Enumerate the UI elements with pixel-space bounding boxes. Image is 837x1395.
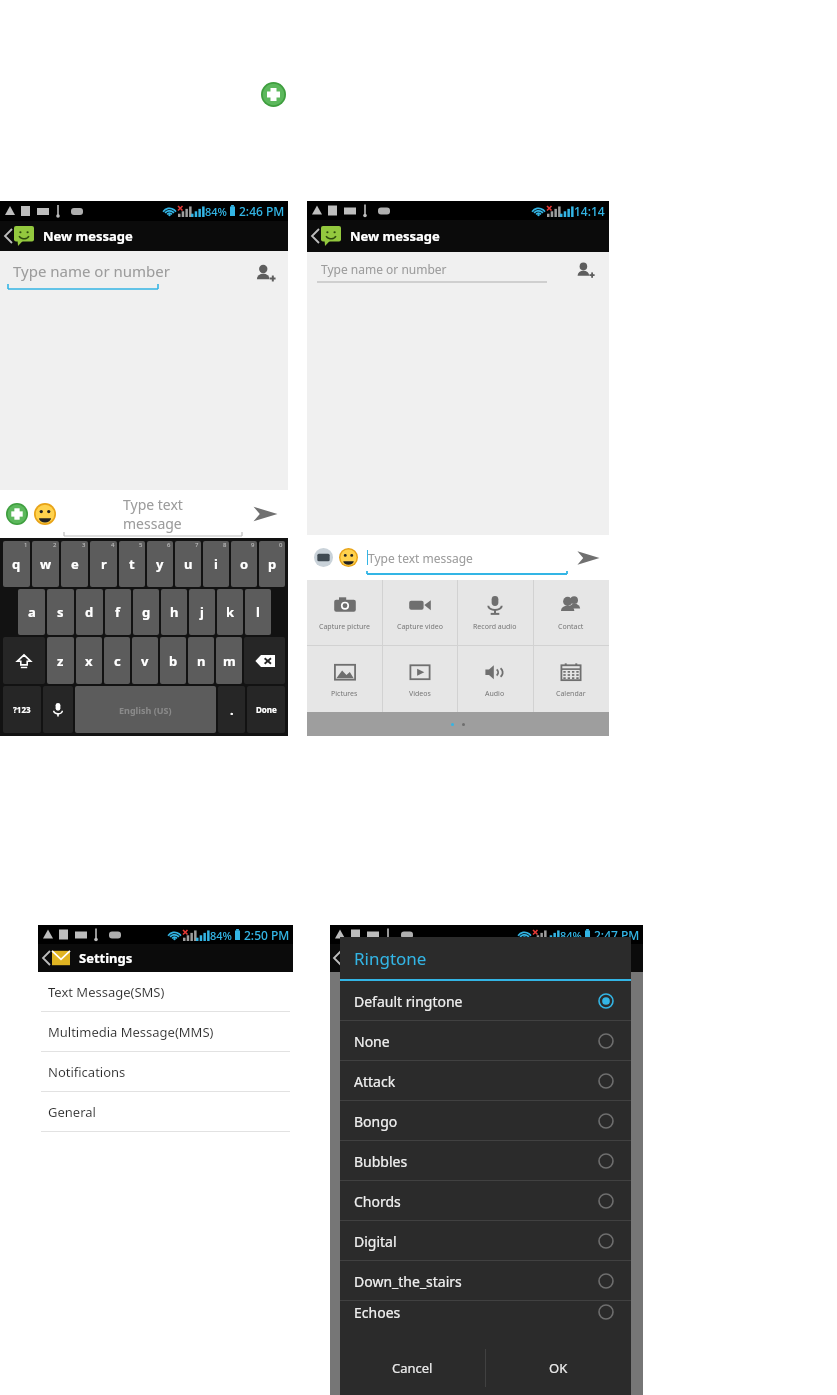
button[interactable]: Insert emoticon (339, 548, 358, 567)
button[interactable]: Pictures (307, 646, 382, 712)
button[interactable]: y (147, 541, 173, 587)
staticText: Capture picture (319, 622, 371, 632)
button[interactable]: f (105, 589, 131, 635)
button[interactable]: r (90, 541, 117, 587)
button[interactable]: t (119, 541, 145, 587)
button[interactable]: u (175, 541, 201, 587)
staticText: 1 (24, 541, 28, 549)
button[interactable]: Add contact (254, 263, 276, 285)
button[interactable]: Text Message(SMS) (38, 972, 293, 1012)
staticText: Bongo (354, 1112, 398, 1131)
button[interactable]: e (61, 541, 88, 587)
staticText: j (200, 603, 204, 621)
button[interactable]: Contact (533, 580, 609, 645)
staticText: New message (350, 227, 440, 245)
button[interactable]: Insert emoticon (34, 503, 56, 525)
button[interactable]: Bongo (340, 1101, 631, 1141)
button[interactable]: Type text (64, 492, 242, 536)
staticText: Calendar (556, 689, 586, 699)
button[interactable]: Capture picture (307, 580, 382, 645)
button[interactable]: Multimedia Message(MMS) (38, 1012, 293, 1052)
staticText: z (57, 652, 64, 670)
button[interactable]: Digital (340, 1221, 631, 1261)
button[interactable]: Keyboard (314, 548, 333, 567)
button[interactable]: Default ringtone (340, 981, 631, 1021)
button[interactable]: General (38, 1092, 293, 1132)
button[interactable]: a (18, 589, 45, 635)
button[interactable]: p (259, 541, 285, 587)
staticText: v (141, 652, 149, 670)
staticText: r (101, 555, 107, 573)
button[interactable]: Type text message (367, 542, 567, 574)
button[interactable]: v (132, 637, 158, 684)
staticText: a (28, 603, 36, 621)
button[interactable]: Add attachment (6, 503, 28, 525)
button[interactable]: n (188, 637, 214, 684)
button[interactable]: . (218, 686, 245, 733)
button[interactable]: OK (486, 1349, 631, 1387)
button[interactable]: Record audio (457, 580, 533, 645)
button[interactable]: Calendar (533, 646, 609, 712)
staticText: 0 (279, 541, 283, 549)
button[interactable] (43, 686, 73, 733)
button[interactable]: Chords (340, 1181, 631, 1221)
button[interactable]: Attack (340, 1061, 631, 1101)
staticText: 2:50 PM (244, 927, 290, 943)
button[interactable]: m (216, 637, 242, 684)
button[interactable]: English (US) (75, 686, 216, 733)
button[interactable]: Cancel (340, 1349, 485, 1387)
button[interactable]: Echoes (340, 1301, 631, 1323)
button[interactable]: Bubbles (340, 1141, 631, 1181)
staticText: Chords (354, 1192, 401, 1211)
button[interactable]: Add contact (575, 261, 595, 281)
staticText: 2:46 PM (239, 203, 285, 219)
button[interactable]: Videos (382, 646, 457, 712)
button[interactable]: w (32, 541, 59, 587)
button[interactable]: o (231, 541, 257, 587)
staticText: Cancel (392, 1359, 433, 1377)
button[interactable]: q (3, 541, 30, 587)
button[interactable]: None (340, 1021, 631, 1061)
button[interactable]: s (47, 589, 74, 635)
button[interactable]: Navigate up (310, 226, 343, 246)
button[interactable]: d (76, 589, 103, 635)
button[interactable]: g (133, 589, 159, 635)
staticText: General (48, 1103, 96, 1121)
staticText: g (142, 603, 151, 621)
button[interactable]: Done (247, 686, 285, 733)
button[interactable]: k (217, 589, 243, 635)
button[interactable]: l (245, 589, 271, 635)
staticText: m (223, 652, 236, 670)
staticText: Default ringtone (354, 992, 463, 1011)
button[interactable]: Navigate up (3, 226, 36, 246)
staticText: Type text message (368, 550, 473, 566)
button[interactable]: Audio (457, 646, 533, 712)
button[interactable]: b (160, 637, 186, 684)
button[interactable] (3, 637, 45, 684)
button[interactable]: Down_the_stairs (340, 1261, 631, 1301)
button[interactable]: h (161, 589, 187, 635)
staticText: i (214, 555, 218, 573)
staticText: ?123 (13, 704, 31, 715)
button[interactable]: z (47, 637, 74, 684)
staticText: message (123, 514, 182, 533)
button[interactable]: c (104, 637, 130, 684)
button[interactable]: ?123 (3, 686, 41, 733)
button[interactable]: Notifications (38, 1052, 293, 1092)
staticText: c (114, 652, 121, 670)
staticText: Text Message(SMS) (48, 983, 165, 1001)
button[interactable]: j (189, 589, 215, 635)
button[interactable]: x (76, 637, 102, 684)
staticText: b (169, 652, 178, 670)
staticText: Ringtone (354, 947, 427, 970)
staticText: Type name or number (13, 261, 170, 281)
staticText: o (240, 555, 249, 573)
button[interactable]: Send (242, 490, 288, 538)
button[interactable]: Navigate up (41, 949, 72, 967)
button[interactable]: i (203, 541, 229, 587)
button[interactable]: Capture video (382, 580, 457, 645)
staticText: 84% (560, 928, 582, 943)
button[interactable] (244, 637, 285, 684)
staticText: Capture video (397, 622, 443, 632)
button[interactable]: Send (567, 535, 609, 580)
